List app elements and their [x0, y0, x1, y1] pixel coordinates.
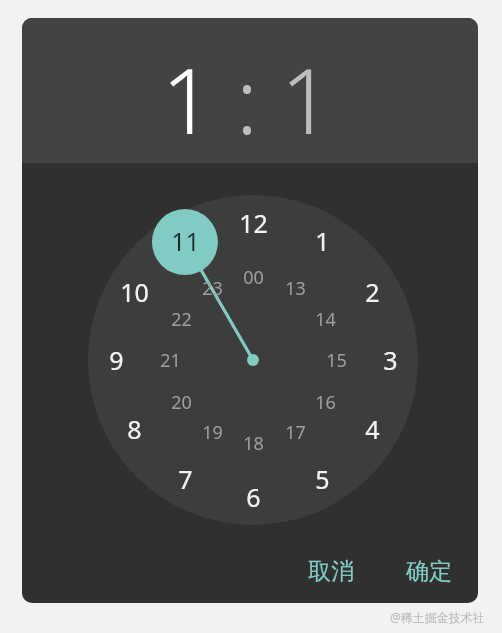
staticText: 15 — [326, 348, 347, 373]
staticText: 4 — [365, 412, 380, 446]
button[interactable]: 11 — [140, 38, 235, 148]
staticText: 9 — [109, 343, 124, 377]
button[interactable]: 10 — [112, 270, 156, 314]
staticText: 13 — [285, 276, 306, 301]
button[interactable]: 6 — [231, 475, 275, 519]
button[interactable]: 18 — [233, 425, 273, 461]
button[interactable]: 7 — [163, 457, 207, 501]
staticText: 确定 — [406, 557, 452, 586]
staticText: 8 — [127, 412, 142, 446]
staticText: 12 — [239, 206, 268, 240]
staticText: 22 — [171, 307, 192, 332]
button[interactable]: 00 — [233, 259, 273, 295]
button[interactable]: 15 — [316, 342, 356, 378]
button[interactable]: 1 — [300, 219, 344, 263]
staticText: 18 — [243, 431, 264, 456]
button[interactable]: 19 — [192, 414, 232, 450]
staticText: 3 — [383, 343, 398, 377]
button[interactable]: 4 — [350, 407, 394, 451]
button[interactable]: 5 — [300, 457, 344, 501]
button[interactable]: 21 — [150, 342, 190, 378]
button[interactable]: 11 — [163, 219, 207, 263]
button[interactable]: 12 — [231, 201, 275, 245]
button[interactable]: 22 — [161, 301, 201, 337]
staticText: 23 — [202, 276, 223, 301]
staticText: 14 — [315, 307, 336, 332]
staticText: 11 — [259, 38, 354, 148]
button[interactable]: 14 — [305, 301, 345, 337]
staticText: 7 — [178, 462, 193, 496]
staticText: : — [236, 38, 258, 148]
staticText: 19 — [202, 420, 223, 445]
staticText: 5 — [315, 462, 330, 496]
staticText: @稀土掘金技术社区 — [390, 609, 495, 629]
button[interactable]: 20 — [161, 384, 201, 420]
button[interactable]: 17 — [275, 414, 315, 450]
staticText: 2 — [365, 275, 380, 309]
staticText: 6 — [246, 480, 261, 514]
staticText: 20 — [171, 390, 192, 415]
button[interactable]: 取消 — [294, 550, 368, 592]
staticText: 00 — [243, 265, 264, 290]
staticText: 1 — [315, 224, 330, 258]
button[interactable]: 确定 — [392, 550, 466, 592]
staticText: 10 — [120, 275, 149, 309]
staticText: 11 — [140, 38, 235, 148]
staticText: 取消 — [308, 557, 354, 586]
button[interactable]: 13 — [275, 270, 315, 306]
button[interactable]: 9 — [94, 338, 138, 382]
button[interactable]: 23 — [192, 270, 232, 306]
button[interactable]: 16 — [305, 384, 345, 420]
staticText: 17 — [285, 420, 306, 445]
staticText: 16 — [315, 390, 336, 415]
button[interactable]: 8 — [112, 407, 156, 451]
button[interactable]: 11 — [259, 38, 354, 148]
button[interactable]: 3 — [368, 338, 412, 382]
button[interactable]: 2 — [350, 270, 394, 314]
staticText: 11 — [171, 224, 200, 258]
staticText: 21 — [160, 348, 181, 373]
